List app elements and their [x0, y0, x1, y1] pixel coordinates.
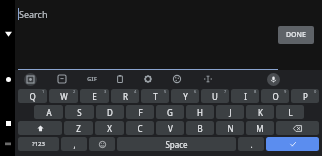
- button[interactable]: GIF: [78, 70, 106, 88]
- button[interactable]: J: [216, 105, 244, 119]
- staticText: 3: [104, 89, 107, 94]
- button[interactable]: Hide keyboard: [1, 137, 15, 151]
- button[interactable]: Emoji: [89, 137, 115, 151]
- staticText: C: [137, 123, 143, 134]
- button[interactable]: Recents: [1, 116, 15, 130]
- staticText: 5: [164, 89, 167, 94]
- button[interactable]: Home: [1, 72, 15, 86]
- button[interactable]: H: [186, 105, 214, 119]
- staticText: 9: [284, 89, 287, 94]
- staticText: O: [272, 91, 279, 102]
- button[interactable]: ,: [61, 137, 87, 151]
- button[interactable]: Themes: [162, 70, 191, 88]
- staticText: 8: [254, 89, 257, 94]
- button[interactable]: ?123: [18, 137, 59, 151]
- staticText: W: [60, 91, 68, 102]
- staticText: S: [77, 107, 82, 118]
- button[interactable]: Search: [18, 8, 48, 20]
- staticText: Search: [19, 8, 48, 20]
- staticText: R: [123, 91, 128, 102]
- staticText: X: [107, 123, 112, 134]
- staticText: H: [197, 107, 203, 118]
- staticText: G: [167, 107, 173, 118]
- staticText: 0: [314, 89, 317, 94]
- staticText: .: [250, 139, 253, 150]
- button[interactable]: Settings: [134, 70, 162, 88]
- staticText: 2: [73, 89, 76, 94]
- staticText: K: [258, 107, 263, 118]
- button[interactable]: C: [126, 121, 154, 135]
- button[interactable]: Clipboard: [106, 70, 134, 88]
- button[interactable]: L: [276, 105, 304, 119]
- staticText: T: [153, 91, 158, 102]
- button[interactable]: Y: [171, 89, 199, 103]
- button[interactable]: T: [141, 89, 169, 103]
- staticText: GIF: [87, 75, 97, 83]
- button[interactable]: Stickers: [46, 70, 78, 88]
- staticText: P: [303, 91, 308, 102]
- button[interactable]: Q: [18, 89, 47, 103]
- button[interactable]: DONE: [278, 26, 314, 44]
- button[interactable]: A: [34, 105, 63, 119]
- button[interactable]: X: [95, 121, 124, 135]
- button[interactable]: Enter: [266, 137, 319, 151]
- staticText: Y: [183, 91, 188, 102]
- button[interactable]: D: [96, 105, 124, 119]
- button[interactable]: Back: [1, 26, 15, 40]
- staticText: N: [227, 123, 234, 134]
- staticText: M: [256, 123, 264, 134]
- button[interactable]: K: [246, 105, 274, 119]
- staticText: Q: [29, 91, 36, 102]
- button[interactable]: Voice input: [225, 70, 322, 88]
- button[interactable]: Z: [64, 121, 93, 135]
- staticText: D: [107, 107, 113, 118]
- button[interactable]: Shift: [18, 121, 62, 135]
- button[interactable]: U: [201, 89, 229, 103]
- button[interactable]: Google search: [15, 70, 46, 88]
- button[interactable]: I: [231, 89, 259, 103]
- button[interactable]: G: [156, 105, 184, 119]
- button[interactable]: S: [65, 105, 94, 119]
- button[interactable]: F: [126, 105, 154, 119]
- staticText: V: [168, 123, 173, 134]
- staticText: 1: [42, 89, 45, 94]
- staticText: 6: [194, 89, 197, 94]
- staticText: 7: [224, 89, 227, 94]
- button[interactable]: W: [49, 89, 78, 103]
- button[interactable]: Text editing: [191, 70, 225, 88]
- button[interactable]: V: [156, 121, 184, 135]
- staticText: Z: [76, 123, 81, 134]
- staticText: B: [197, 123, 203, 134]
- button[interactable]: O: [261, 89, 289, 103]
- button[interactable]: Backspace: [276, 121, 319, 135]
- button[interactable]: B: [186, 121, 214, 135]
- staticText: Space: [165, 139, 188, 150]
- button[interactable]: N: [216, 121, 244, 135]
- staticText: J: [229, 107, 232, 118]
- staticText: L: [288, 107, 293, 118]
- staticText: I: [244, 91, 247, 102]
- button[interactable]: R: [111, 89, 139, 103]
- staticText: DONE: [286, 30, 306, 40]
- button[interactable]: P: [291, 89, 319, 103]
- staticText: 4: [134, 89, 137, 94]
- button[interactable]: E: [80, 89, 109, 103]
- button[interactable]: Space: [117, 137, 236, 151]
- button[interactable]: M: [246, 121, 274, 135]
- staticText: ?123: [32, 140, 45, 148]
- staticText: E: [92, 91, 97, 102]
- staticText: A: [46, 107, 52, 118]
- staticText: F: [138, 107, 143, 118]
- staticText: ,: [73, 139, 76, 150]
- staticText: U: [212, 91, 218, 102]
- button[interactable]: .: [238, 137, 264, 151]
